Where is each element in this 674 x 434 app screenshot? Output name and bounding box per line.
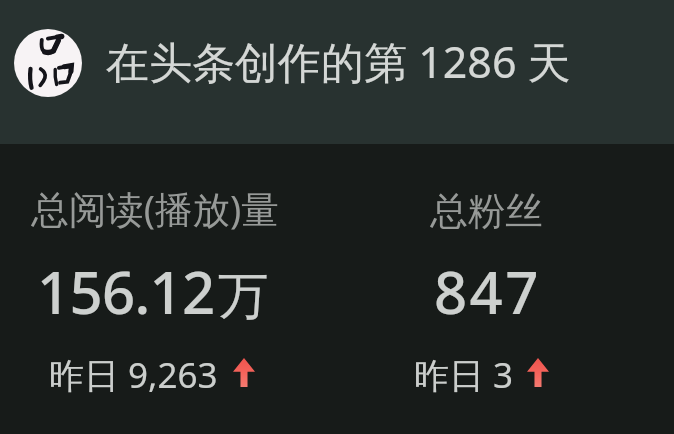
staticText: 总阅读(播放)量 bbox=[31, 183, 279, 234]
button[interactable]: 总阅读(播放)量 bbox=[31, 183, 279, 234]
staticText: 总粉丝 bbox=[430, 188, 543, 235]
button[interactable]: 847 bbox=[434, 252, 541, 331]
staticText: 万 bbox=[218, 264, 269, 328]
staticText: 156.12 bbox=[37, 252, 215, 331]
button[interactable]: Profile avatar bbox=[0, 0, 674, 144]
staticText: 昨日 3 bbox=[414, 351, 514, 399]
button[interactable]: 总粉丝 bbox=[430, 188, 543, 235]
button[interactable]: 昨日 3 bbox=[414, 351, 549, 399]
button[interactable]: 昨日 9,263 bbox=[49, 351, 255, 399]
other: Increase bbox=[527, 358, 549, 387]
staticText: 昨日 9,263 bbox=[49, 351, 218, 399]
other: Increase bbox=[233, 358, 255, 387]
button[interactable]: Profile avatar bbox=[14, 29, 82, 97]
staticText: 847 bbox=[434, 252, 541, 331]
staticText: 在头条创作的第 1286 天 bbox=[106, 32, 571, 91]
button[interactable]: 156.12 bbox=[37, 252, 266, 331]
